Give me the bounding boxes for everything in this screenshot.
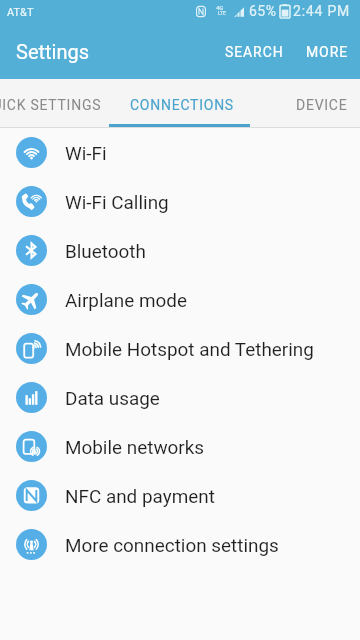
staticText: CONNECTIONS bbox=[130, 97, 234, 113]
button[interactable]: Wi-Fi bbox=[0, 128, 360, 177]
button[interactable]: Mobile networks bbox=[0, 422, 360, 471]
staticText: 65% bbox=[249, 3, 277, 19]
staticText: Wi-Fi Calling bbox=[65, 191, 169, 213]
staticText: MORE bbox=[306, 44, 349, 60]
button[interactable]: SEARCH bbox=[214, 24, 295, 79]
button[interactable]: CONNECTIONS bbox=[112, 81, 252, 129]
button[interactable]: NFC and payment bbox=[0, 471, 360, 520]
staticText: AT&T bbox=[7, 6, 34, 19]
staticText: Data usage bbox=[65, 387, 160, 409]
button[interactable]: Wi-Fi Calling bbox=[0, 177, 360, 226]
staticText: LTE bbox=[218, 10, 226, 16]
staticText: Bluetooth bbox=[65, 240, 146, 262]
button[interactable]: QUICK SETTINGS bbox=[0, 81, 112, 129]
staticText: 4G bbox=[216, 4, 224, 11]
button[interactable]: Mobile Hotspot and Tethering bbox=[0, 324, 360, 373]
button[interactable]: MORE bbox=[295, 24, 360, 79]
button[interactable]: More connection settings bbox=[0, 520, 360, 569]
staticText: More connection settings bbox=[65, 534, 279, 556]
staticText: Mobile Hotspot and Tethering bbox=[65, 338, 314, 360]
button[interactable]: Airplane mode bbox=[0, 275, 360, 324]
button[interactable]: Bluetooth bbox=[0, 226, 360, 275]
staticText: NFC and payment bbox=[65, 485, 215, 507]
staticText: Settings bbox=[16, 40, 90, 63]
button[interactable]: DEVICE bbox=[252, 81, 360, 129]
staticText: QUICK SETTINGS bbox=[0, 97, 102, 113]
staticText: SEARCH bbox=[225, 44, 284, 60]
staticText: Mobile networks bbox=[65, 436, 205, 458]
button[interactable]: Data usage bbox=[0, 373, 360, 422]
staticText: Airplane mode bbox=[65, 289, 187, 311]
staticText: 2:44 PM bbox=[293, 3, 351, 19]
staticText: DEVICE bbox=[296, 97, 348, 113]
staticText: Wi-Fi bbox=[65, 142, 107, 164]
